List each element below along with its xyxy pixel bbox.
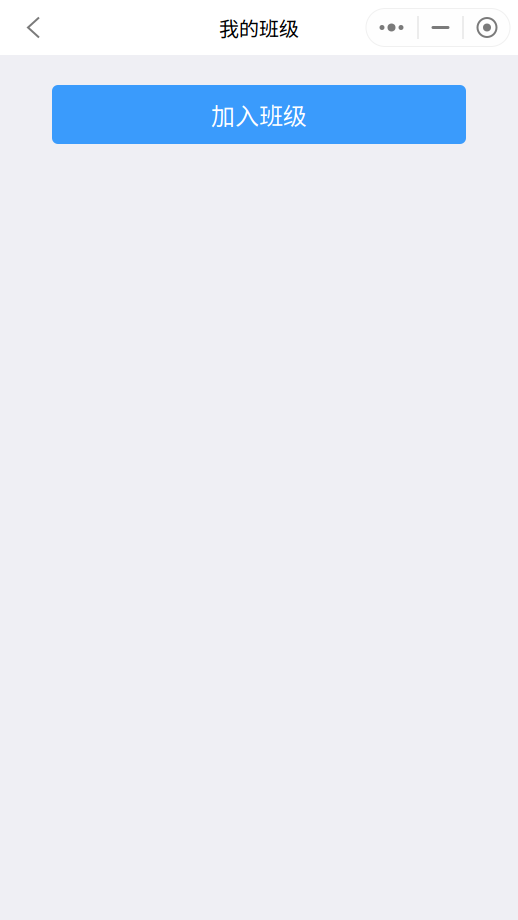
button[interactable]: Back xyxy=(0,0,60,55)
button[interactable]: 加入班级 xyxy=(52,85,466,144)
button[interactable]: Minimize xyxy=(418,8,462,46)
button[interactable]: More xyxy=(365,8,417,46)
staticText: 我的班级 xyxy=(219,13,299,42)
button[interactable]: Close xyxy=(463,8,510,46)
staticText: 加入班级 xyxy=(211,97,307,132)
